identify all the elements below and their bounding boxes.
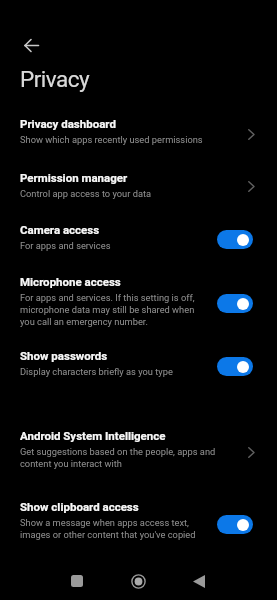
button[interactable]: Android System Intelligence — [0, 429, 277, 469]
staticText: Get suggestions based on the people, app… — [20, 446, 216, 469]
staticText: Microphone access — [20, 275, 121, 288]
button[interactable] — [123, 566, 153, 596]
staticText: Camera access — [20, 223, 100, 236]
staticText: Show clipboard access — [20, 500, 139, 513]
staticText: Show which apps recently used permission… — [20, 134, 203, 145]
button[interactable]: Show clipboard access — [0, 500, 277, 540]
button[interactable] — [16, 32, 46, 58]
button[interactable]: Permission manager — [0, 171, 277, 199]
button[interactable]: Show passwords — [0, 349, 277, 377]
staticText: Privacy — [20, 66, 90, 92]
staticText: Privacy dashboard — [20, 117, 116, 130]
staticText: Android System Intelligence — [20, 429, 166, 442]
button[interactable]: Camera access — [0, 223, 277, 251]
button[interactable]: Microphone access — [0, 275, 277, 327]
staticText: For apps and services — [20, 240, 111, 251]
button[interactable] — [184, 566, 214, 596]
staticText: For apps and services. If this setting i… — [20, 292, 195, 327]
staticText: Display characters briefly as you type — [20, 366, 173, 377]
staticText: Show a message when apps access text, im… — [20, 517, 196, 540]
button[interactable]: Privacy dashboard — [0, 117, 277, 145]
staticText: Show passwords — [20, 349, 108, 362]
staticText: Control app access to your data — [20, 188, 152, 199]
staticText: Permission manager — [20, 171, 128, 184]
button[interactable] — [62, 566, 92, 596]
